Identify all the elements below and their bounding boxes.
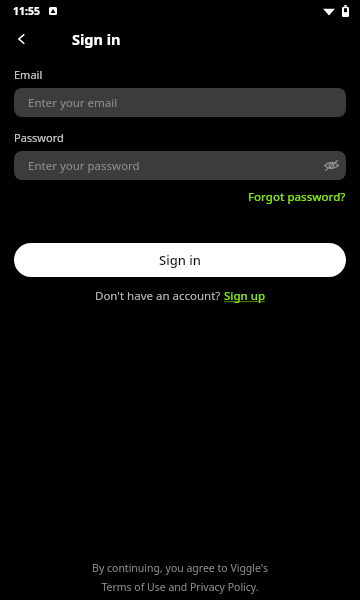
- button[interactable]: Sign in: [14, 243, 346, 277]
- staticText: Enter your email: [28, 95, 118, 111]
- button[interactable]: Enter your email: [14, 88, 346, 117]
- staticText: Email: [14, 67, 43, 82]
- staticText: Forgot password?: [248, 189, 346, 205]
- button[interactable]: Back: [0, 22, 44, 56]
- staticText: Sign up: [224, 288, 266, 304]
- staticText: Terms of Use and Privacy Policy.: [101, 580, 259, 594]
- staticText: 11:55: [13, 4, 40, 18]
- staticText: Don't have an account?: [95, 288, 224, 304]
- button[interactable]: Sign up: [224, 288, 266, 304]
- staticText: By continuing, you agree to Viggle's: [92, 561, 268, 575]
- button[interactable]: Forgot password?: [248, 187, 360, 207]
- staticText: Password: [14, 130, 64, 145]
- staticText: Sign in: [72, 29, 121, 49]
- button[interactable]: Terms of Use and Privacy Policy.: [101, 580, 259, 594]
- button[interactable]: Enter your password: [14, 151, 346, 180]
- staticText: Sign in: [159, 251, 201, 269]
- button[interactable]: Show password: [316, 151, 346, 180]
- staticText: Enter your password: [28, 158, 140, 174]
